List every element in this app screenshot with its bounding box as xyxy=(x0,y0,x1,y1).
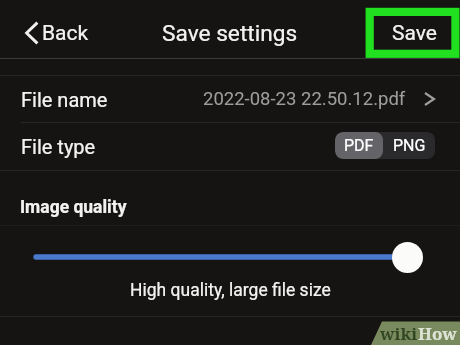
staticText: Save settings xyxy=(162,20,298,47)
button[interactable]: File name xyxy=(0,76,460,122)
button[interactable]: PNG xyxy=(383,132,435,159)
staticText: Image quality xyxy=(20,197,127,218)
staticText: How xyxy=(418,322,457,345)
staticText: PNG xyxy=(393,136,426,155)
button[interactable]: PDF xyxy=(335,132,383,159)
staticText: Back xyxy=(42,21,89,46)
button[interactable]: Image quality slider xyxy=(392,242,423,273)
staticText: Save xyxy=(392,21,437,46)
button[interactable]: Save xyxy=(392,0,437,58)
staticText: File type xyxy=(21,135,96,158)
staticText: wiki xyxy=(380,322,418,345)
button[interactable]: Back xyxy=(25,0,89,58)
staticText: PDF xyxy=(344,136,374,155)
button[interactable]: File type xyxy=(0,123,460,170)
staticText: High quality, large file size xyxy=(130,280,331,301)
staticText: File name xyxy=(21,88,108,111)
staticText: 2022-08-23 22.50.12.pdf xyxy=(203,88,406,110)
